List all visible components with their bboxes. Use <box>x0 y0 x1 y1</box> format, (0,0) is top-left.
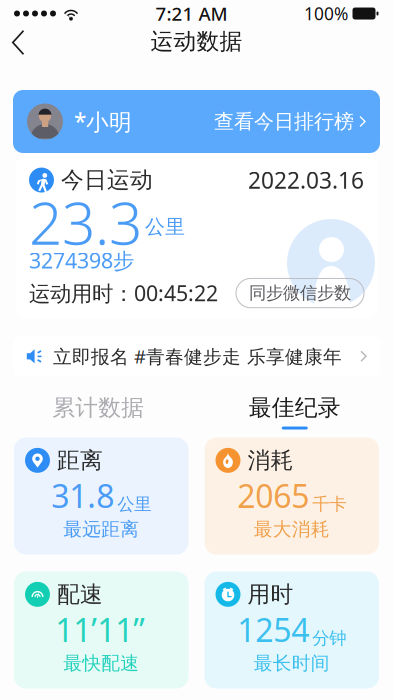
button[interactable]: Back <box>0 27 39 56</box>
staticText: 立即报名 #青春健步走 乐享健康年 <box>53 344 342 369</box>
staticText: 最快配速 <box>63 652 139 675</box>
button[interactable]: 累计数据 <box>0 394 196 429</box>
button[interactable]: 最佳纪录 <box>196 394 393 429</box>
staticText: 3274398步 <box>29 246 134 274</box>
staticText: 100% <box>304 2 348 25</box>
staticText: 用时 <box>247 580 293 608</box>
staticText: 千卡 <box>312 493 346 515</box>
staticText: 同步微信步数 <box>249 282 351 304</box>
staticText: 11’11” <box>55 608 144 651</box>
staticText: 最远距离 <box>63 518 139 541</box>
staticText: 最长时间 <box>254 652 330 675</box>
staticText: 分钟 <box>312 627 346 649</box>
staticText: 查看今日排行榜 <box>214 109 354 134</box>
button[interactable]: 消耗 <box>204 438 379 555</box>
staticText: 公里 <box>145 214 185 239</box>
staticText: 7:21 AM <box>155 1 227 26</box>
staticText: *小明 <box>74 106 132 136</box>
staticText: 23.3 <box>29 183 142 261</box>
staticText: 最大消耗 <box>254 518 330 541</box>
button[interactable]: 同步微信步数 <box>236 278 364 308</box>
staticText: 2065 <box>237 474 309 517</box>
staticText: 今日运动 <box>61 166 153 194</box>
staticText: 运动用时：00:45:22 <box>29 279 218 307</box>
staticText: 消耗 <box>247 446 293 474</box>
button[interactable]: *小明 <box>13 90 380 153</box>
button[interactable]: 配速 <box>14 572 188 689</box>
staticText: 累计数据 <box>52 394 144 421</box>
staticText: 公里 <box>117 493 151 515</box>
button[interactable]: 立即报名 #青春健步走 乐享健康年 <box>13 336 380 377</box>
button[interactable]: 距离 <box>14 438 188 555</box>
staticText: 配速 <box>57 580 103 608</box>
staticText: 31.8 <box>51 474 114 517</box>
staticText: 最佳纪录 <box>249 394 341 421</box>
staticText: 运动数据 <box>150 28 242 55</box>
button[interactable]: 用时 <box>204 572 379 689</box>
staticText: 距离 <box>57 446 103 474</box>
staticText: 2022.03.16 <box>248 165 364 195</box>
staticText: 1254 <box>237 608 309 651</box>
